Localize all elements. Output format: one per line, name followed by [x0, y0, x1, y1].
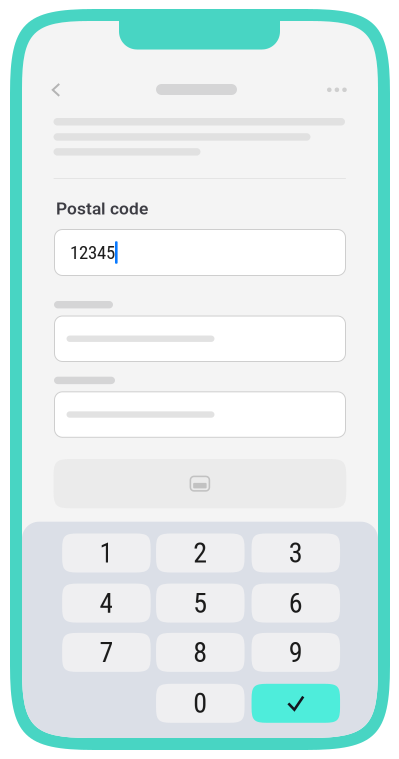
staticText: 4	[99, 587, 113, 619]
staticText: 2	[193, 537, 207, 569]
button[interactable]: 3	[252, 533, 340, 572]
button[interactable]: More options	[321, 75, 353, 105]
button[interactable]: 4	[62, 584, 151, 623]
button[interactable]: Back	[41, 75, 71, 105]
staticText: Postal code	[56, 198, 148, 219]
staticText: 8	[193, 636, 207, 669]
staticText: 0	[193, 687, 207, 720]
button[interactable]: 2	[156, 533, 245, 572]
button[interactable]: 8	[156, 633, 245, 672]
button[interactable]: 9	[252, 633, 340, 672]
button[interactable]: 1	[62, 533, 151, 572]
staticText: 7	[99, 636, 113, 669]
button[interactable]: 6	[252, 584, 340, 623]
staticText: 3	[289, 537, 303, 569]
staticText: 12345	[70, 242, 115, 263]
button[interactable]: 5	[156, 584, 245, 623]
staticText: 9	[289, 636, 303, 669]
button[interactable]: Confirm	[252, 684, 340, 723]
staticText: 1	[99, 537, 113, 569]
button[interactable]: 7	[62, 633, 151, 672]
staticText: 5	[193, 587, 207, 619]
button[interactable]: Hide keyboard	[53, 459, 346, 508]
staticText: 6	[289, 587, 303, 619]
button[interactable]: 0	[156, 684, 245, 723]
